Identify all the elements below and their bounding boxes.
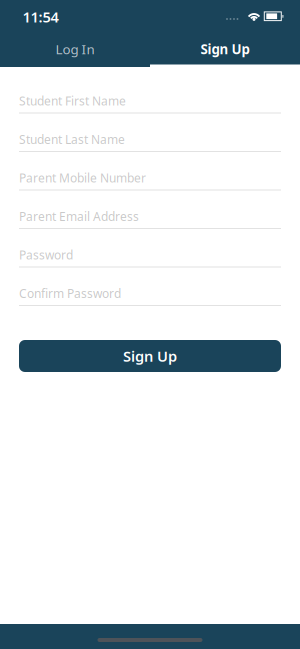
staticText: Parent Email Address <box>19 208 139 224</box>
staticText: Password <box>19 247 73 263</box>
button[interactable]: Log In <box>0 30 150 67</box>
staticText: Confirm Password <box>19 285 121 301</box>
button[interactable]: Student Last Name <box>19 134 281 173</box>
button[interactable]: Sign Up <box>150 30 300 67</box>
button[interactable]: Confirm Password <box>19 288 281 327</box>
button[interactable]: Password <box>19 250 281 288</box>
staticText: Log In <box>55 40 94 58</box>
staticText: 11:54 <box>22 7 58 26</box>
button[interactable]: Parent Email Address <box>19 211 281 250</box>
button[interactable]: Parent Mobile Number <box>19 173 281 211</box>
button[interactable]: Sign Up <box>19 340 281 372</box>
staticText: Student Last Name <box>19 131 125 147</box>
staticText: Sign Up <box>200 40 249 58</box>
staticText: Parent Mobile Number <box>19 170 146 186</box>
button[interactable]: Student First Name <box>19 96 281 134</box>
staticText: Student First Name <box>19 93 126 109</box>
staticText: Sign Up <box>123 346 177 366</box>
